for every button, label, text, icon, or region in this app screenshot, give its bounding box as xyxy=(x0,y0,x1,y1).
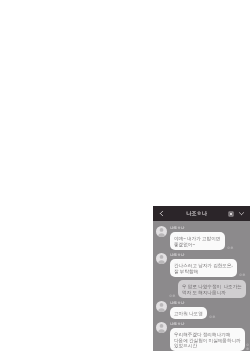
staticText: 먹자 도 해지나움니까 xyxy=(182,289,226,295)
button[interactable]: 나조ㅎ나 xyxy=(156,322,246,351)
staticText: 좋겠없어~ xyxy=(174,241,196,247)
staticText: 나조ㅎ나 xyxy=(170,322,185,327)
button[interactable]: More options xyxy=(237,209,246,218)
staticText: 고마워 나오영 xyxy=(174,310,203,316)
button[interactable]: Menu xyxy=(226,209,235,218)
staticText: 오후 xyxy=(227,246,234,250)
staticText: 잘 부탁합해 xyxy=(174,268,199,274)
staticText: 나조ㅎ나 xyxy=(170,253,185,258)
staticText: 오후 xyxy=(169,294,176,298)
button[interactable]: 오후 xyxy=(167,280,246,298)
button[interactable]: 나조ㅎ나 xyxy=(156,301,246,319)
staticText: 야얘~ 내가가 고밥이면 xyxy=(174,235,221,241)
staticText: 나조ㅎ나 xyxy=(170,301,185,306)
button[interactable]: Back xyxy=(157,209,166,218)
staticText: 간나스러고 남자가 김한오은, xyxy=(174,262,233,268)
button[interactable]: 나조ㅎ나 xyxy=(156,226,246,250)
button[interactable]: 나조ㅎ나 xyxy=(156,253,246,277)
staticText: 우리해주겠다 정리해나기때 xyxy=(174,331,231,337)
staticText: 나조ㅎ나 xyxy=(186,210,207,217)
button[interactable] xyxy=(156,253,167,264)
staticText: 다음에 간실험이 미실제움하니까 xyxy=(174,337,241,343)
button[interactable] xyxy=(156,301,167,312)
staticText: 오후 xyxy=(239,273,246,277)
button[interactable] xyxy=(156,322,167,333)
staticText: 나조ㅎ나 xyxy=(170,226,185,231)
staticText: 있었으시간 xyxy=(174,343,197,348)
staticText: 오후 xyxy=(209,315,216,319)
button[interactable] xyxy=(156,226,167,237)
staticText: 우 맘로 나였수정이 나조가는 xyxy=(182,283,242,289)
